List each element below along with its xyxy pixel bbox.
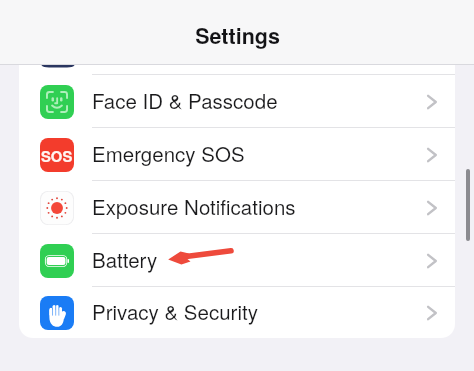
button[interactable] (19, 65, 455, 75)
staticText: SOS (41, 145, 73, 166)
button[interactable]: Battery (19, 234, 455, 287)
button[interactable]: SOS (19, 128, 455, 181)
staticText: Face ID & Passcode (92, 85, 278, 114)
button[interactable]: Face ID & Passcode (19, 75, 455, 128)
staticText: Exposure Notifications (92, 191, 296, 220)
staticText: Battery (92, 244, 158, 273)
button[interactable]: Exposure Notifications (19, 181, 455, 234)
staticText: Privacy & Security (92, 296, 258, 325)
button[interactable]: Privacy & Security (19, 287, 455, 338)
staticText: Emergency SOS (92, 138, 245, 167)
staticText: Settings (195, 20, 280, 51)
